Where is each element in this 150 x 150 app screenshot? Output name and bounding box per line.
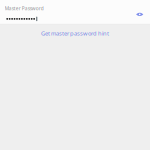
button[interactable]: Get master password hint — [41, 29, 109, 37]
staticText: Get master password hint — [41, 29, 109, 37]
button[interactable]: Show password — [136, 13, 144, 16]
staticText: Master Password — [5, 5, 44, 11]
